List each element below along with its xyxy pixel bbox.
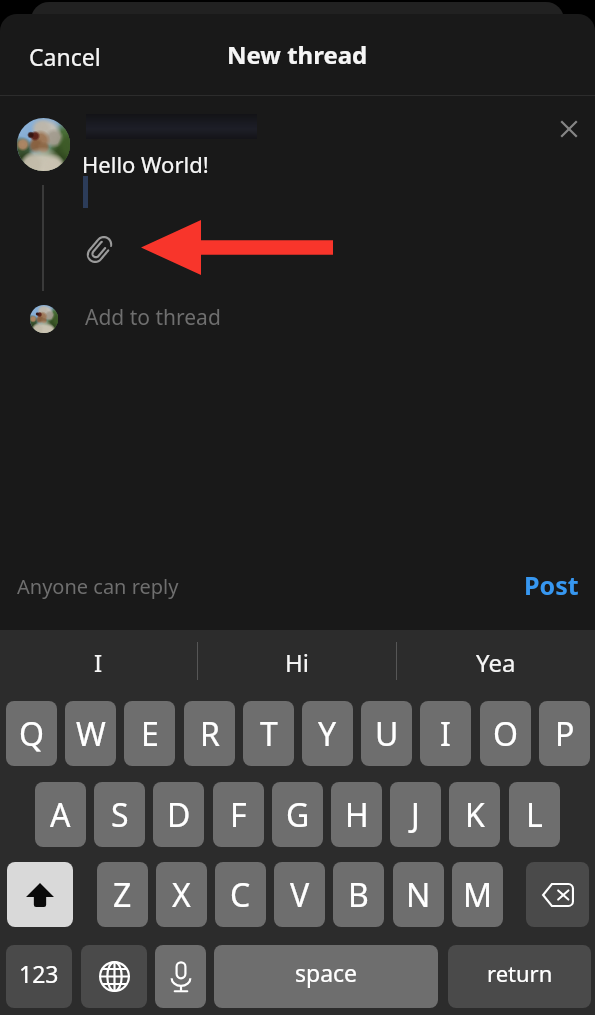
staticText: G <box>286 793 310 837</box>
button[interactable]: A <box>35 782 86 847</box>
staticText: P <box>555 712 575 756</box>
button[interactable]: I <box>0 630 197 692</box>
button[interactable]: O <box>480 701 531 766</box>
button[interactable]: B <box>333 862 384 927</box>
staticText: I <box>94 646 103 679</box>
staticText: A <box>50 793 71 837</box>
staticText: Add to thread <box>85 303 221 332</box>
button[interactable]: space <box>214 945 438 1008</box>
button[interactable]: N <box>393 862 444 927</box>
staticText: Z <box>113 873 132 917</box>
button[interactable]: Post <box>506 556 595 614</box>
staticText: O <box>493 712 518 756</box>
staticText: return <box>487 958 553 988</box>
staticText: W <box>76 712 106 756</box>
staticText: J <box>411 793 420 837</box>
button[interactable]: J <box>390 782 441 847</box>
button[interactable]: F <box>213 782 264 847</box>
staticText: Hi <box>285 646 309 679</box>
staticText: Cancel <box>29 41 101 72</box>
button[interactable]: E <box>124 701 175 766</box>
staticText: E <box>141 712 159 756</box>
button[interactable]: L <box>509 782 560 847</box>
button[interactable]: H <box>331 782 382 847</box>
button[interactable]: G <box>272 782 323 847</box>
button[interactable]: Add to thread <box>18 296 278 348</box>
button[interactable]: M <box>452 862 503 927</box>
button[interactable]: Z <box>97 862 148 927</box>
button[interactable]: return <box>448 945 591 1008</box>
staticText: B <box>348 873 369 917</box>
button[interactable]: Next keyboard <box>81 945 147 1008</box>
button[interactable]: Attach media <box>90 235 109 264</box>
button[interactable]: Q <box>6 701 57 766</box>
staticText: R <box>200 712 220 756</box>
staticText: N <box>406 873 431 917</box>
button[interactable]: C <box>215 862 266 927</box>
button[interactable]: X <box>156 862 207 927</box>
staticText: V <box>290 873 310 917</box>
staticText: Y <box>318 712 337 756</box>
button[interactable]: Hi <box>198 630 396 692</box>
button[interactable]: 123 <box>6 945 72 1008</box>
button[interactable]: T <box>243 701 294 766</box>
button[interactable]: V <box>274 862 325 927</box>
staticText: X <box>172 873 191 917</box>
button[interactable]: R <box>184 701 235 766</box>
staticText: Hello World! <box>82 149 209 179</box>
staticText: Q <box>19 712 44 756</box>
staticText: Post <box>524 568 579 602</box>
button[interactable]: S <box>94 782 145 847</box>
staticText: D <box>167 793 191 837</box>
staticText: H <box>345 793 369 837</box>
staticText: Yea <box>476 646 516 679</box>
staticText: 123 <box>19 958 59 989</box>
staticText: F <box>230 793 247 837</box>
button[interactable]: Shift <box>7 862 73 927</box>
button[interactable]: I <box>420 701 471 766</box>
staticText: U <box>375 712 399 756</box>
staticText: I <box>440 712 451 756</box>
staticText: New thread <box>227 38 368 71</box>
button[interactable]: D <box>153 782 204 847</box>
button[interactable]: Cancel <box>11 31 119 82</box>
staticText: S <box>111 793 129 837</box>
button[interactable]: P <box>539 701 590 766</box>
staticText: T <box>260 712 278 756</box>
button[interactable]: Backspace <box>526 862 589 927</box>
staticText: M <box>463 873 493 917</box>
button[interactable]: K <box>449 782 500 847</box>
staticText: space <box>295 957 358 988</box>
staticText: Anyone can reply <box>17 573 179 600</box>
button[interactable]: Y <box>302 701 353 766</box>
button[interactable]: Yea <box>397 630 595 692</box>
button[interactable]: U <box>361 701 412 766</box>
staticText: L <box>526 793 543 837</box>
button[interactable]: Remove post <box>552 112 586 146</box>
staticText: K <box>465 793 485 837</box>
staticText: C <box>230 873 251 917</box>
button[interactable]: Dictation <box>155 945 206 1008</box>
button[interactable]: W <box>65 701 116 766</box>
